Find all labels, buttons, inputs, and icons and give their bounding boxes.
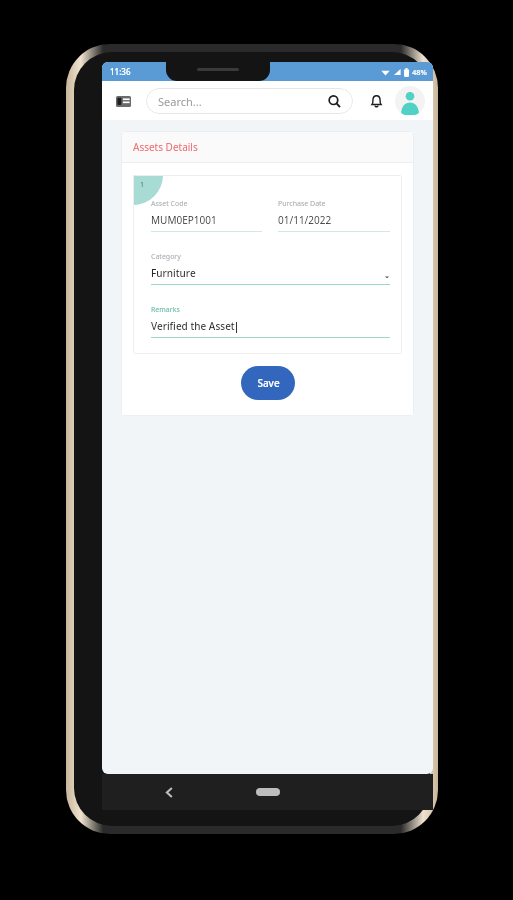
- button[interactable]: Save: [241, 366, 295, 400]
- button[interactable]: Profile: [395, 86, 425, 116]
- button[interactable]: Remarks: [151, 305, 390, 338]
- staticText: 1: [140, 180, 145, 190]
- button[interactable]: Notifications: [363, 88, 389, 114]
- button[interactable]: Back: [156, 779, 182, 805]
- staticText: Purchase Date: [278, 199, 326, 209]
- button[interactable]: Menu: [110, 88, 136, 114]
- button[interactable]: Search...: [146, 88, 353, 114]
- staticText: 01/11/2022: [278, 213, 332, 227]
- staticText: Search...: [158, 94, 328, 109]
- staticText: Asset Code: [151, 199, 188, 209]
- staticText: MUM0EP1001: [151, 213, 217, 227]
- staticText: Furniture: [151, 266, 384, 280]
- staticText: Remarks: [151, 305, 180, 315]
- staticText: Save: [257, 376, 280, 390]
- staticText: 48%: [412, 67, 427, 77]
- staticText: Category: [151, 252, 181, 262]
- staticText: Verified the Asset: [151, 319, 235, 333]
- staticText: Assets Details: [133, 140, 198, 154]
- staticText: 11:36: [110, 66, 131, 77]
- button[interactable]: Category: [151, 252, 390, 285]
- button[interactable]: Asset Code: [151, 199, 262, 232]
- button[interactable]: Home: [251, 784, 285, 800]
- button[interactable]: Purchase Date: [278, 199, 390, 232]
